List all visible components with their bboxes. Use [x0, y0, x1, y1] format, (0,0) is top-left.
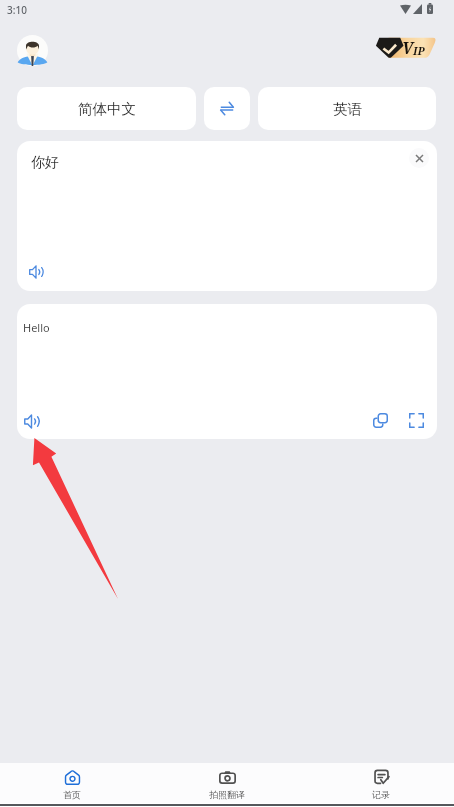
- staticText: Hello: [23, 320, 50, 335]
- button[interactable]: Profile: [17, 35, 48, 66]
- staticText: 记录: [372, 789, 390, 800]
- staticText: 拍照翻译: [209, 789, 245, 800]
- button[interactable]: 英语: [258, 87, 436, 130]
- button[interactable]: Clear text: [409, 148, 429, 168]
- staticText: 3:10: [7, 3, 27, 17]
- staticText: 首页: [63, 789, 81, 800]
- button[interactable]: 简体中文: [17, 87, 196, 130]
- button[interactable]: Swap languages: [204, 87, 250, 130]
- button[interactable]: Fullscreen: [404, 408, 428, 432]
- staticText: 简体中文: [78, 100, 136, 118]
- staticText: 你好: [31, 154, 59, 172]
- staticText: 英语: [333, 100, 362, 118]
- staticText: V: [402, 37, 414, 59]
- button[interactable]: VIP: [375, 36, 437, 59]
- button[interactable]: Copy: [368, 408, 392, 432]
- button[interactable]: 记录: [339, 763, 423, 800]
- button[interactable]: 首页: [30, 763, 114, 800]
- staticText: IP: [413, 43, 425, 58]
- button[interactable]: Play translation audio: [19, 409, 43, 433]
- button[interactable]: Play source audio: [24, 260, 48, 284]
- button[interactable]: 拍照翻译: [185, 763, 269, 800]
